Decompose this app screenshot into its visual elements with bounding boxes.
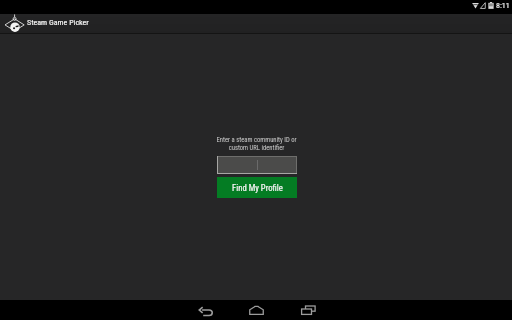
button[interactable]: Steam community ID input xyxy=(217,156,297,174)
button[interactable]: Steam Game Picker xyxy=(4,14,512,34)
staticText: Steam Game Picker xyxy=(27,18,89,27)
staticText: Enter a steam community ID or custom URL… xyxy=(216,136,297,152)
staticText: Find My Profile xyxy=(232,183,283,193)
button[interactable]: Home xyxy=(230,300,282,320)
button[interactable]: Recent apps xyxy=(282,300,334,320)
staticText: 8:11 xyxy=(496,1,510,10)
button[interactable]: Find My Profile xyxy=(217,177,297,198)
button[interactable]: Back xyxy=(178,300,230,320)
